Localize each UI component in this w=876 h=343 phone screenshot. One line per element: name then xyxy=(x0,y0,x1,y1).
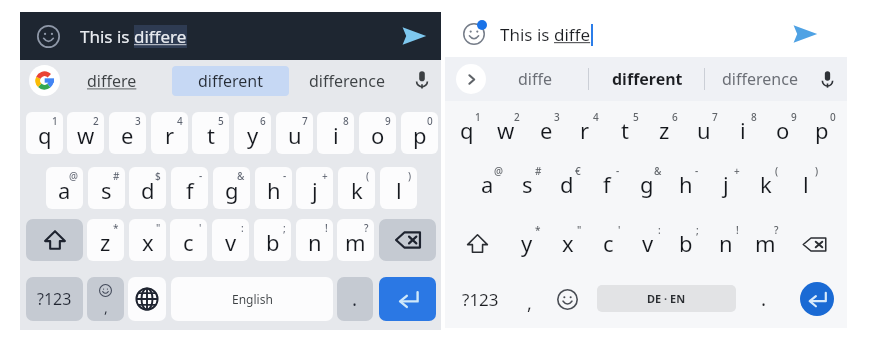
button[interactable]: h xyxy=(668,164,704,204)
staticText: This is xyxy=(500,23,554,46)
button[interactable]: w xyxy=(488,110,524,150)
button[interactable]: v xyxy=(212,219,249,261)
button[interactable]: Google xyxy=(29,65,60,96)
staticText: 1 xyxy=(475,110,481,124)
button[interactable]: difference xyxy=(296,60,398,101)
staticText: h xyxy=(267,175,281,205)
button[interactable]: e xyxy=(528,110,564,150)
button[interactable]: . xyxy=(748,275,780,323)
button[interactable]: Send xyxy=(401,23,427,49)
button[interactable]: . xyxy=(337,277,373,321)
button[interactable]: different xyxy=(597,57,697,101)
button[interactable]: a xyxy=(46,167,83,209)
button[interactable]: z xyxy=(646,110,682,150)
button[interactable]: c xyxy=(170,219,207,261)
button[interactable]: u xyxy=(276,112,313,154)
button[interactable]: k xyxy=(748,164,784,204)
button[interactable]: ?123 xyxy=(453,275,508,323)
staticText: € xyxy=(575,164,581,178)
button[interactable]: z xyxy=(87,219,124,261)
button[interactable]: difference xyxy=(710,57,810,101)
button[interactable]: m xyxy=(747,223,783,263)
staticText: 0 xyxy=(830,110,836,124)
button[interactable]: Emoji xyxy=(557,289,578,310)
staticText: + xyxy=(322,169,328,183)
staticText: o xyxy=(371,120,385,150)
staticText: # xyxy=(113,169,120,183)
button[interactable]: Backspace xyxy=(379,219,436,261)
button[interactable]: c xyxy=(590,223,626,263)
button[interactable]: j xyxy=(708,164,744,204)
button[interactable]: More suggestions xyxy=(456,64,486,94)
button[interactable]: g xyxy=(213,167,250,209)
button[interactable]: p xyxy=(804,110,840,150)
button[interactable]: Enter xyxy=(800,282,834,316)
button[interactable]: l xyxy=(380,167,417,209)
button[interactable]: y xyxy=(509,223,545,263)
button[interactable]: f xyxy=(589,164,625,204)
button[interactable]: q xyxy=(26,112,63,154)
staticText: - xyxy=(695,164,699,178)
staticText: q xyxy=(38,120,52,150)
button[interactable]: Shift xyxy=(465,231,489,255)
button[interactable]: k xyxy=(338,167,375,209)
staticText: * xyxy=(113,221,119,235)
button[interactable]: d xyxy=(549,164,585,204)
button[interactable]: m xyxy=(337,219,374,261)
button[interactable]: q xyxy=(449,110,485,150)
button[interactable]: Emoji and comma xyxy=(87,277,124,321)
button[interactable]: Send xyxy=(792,21,818,47)
staticText: ; xyxy=(283,221,286,235)
staticText: t xyxy=(207,120,215,150)
button[interactable]: e xyxy=(109,112,146,154)
button[interactable]: s xyxy=(509,164,545,204)
button[interactable]: d xyxy=(129,167,166,209)
button[interactable]: r xyxy=(151,112,188,154)
button[interactable]: w xyxy=(67,112,104,154)
button[interactable]: i xyxy=(725,110,761,150)
button[interactable]: n xyxy=(708,223,744,263)
button[interactable]: different xyxy=(172,66,289,96)
button[interactable]: DE · EN xyxy=(597,285,736,312)
button[interactable]: Switch language xyxy=(128,277,166,321)
button[interactable]: t xyxy=(607,110,643,150)
button[interactable]: Voice input xyxy=(412,70,432,90)
button[interactable]: Voice input xyxy=(817,69,837,89)
staticText: i xyxy=(740,115,746,145)
button[interactable]: differe xyxy=(70,60,154,101)
button[interactable]: h xyxy=(255,167,292,209)
button[interactable]: i xyxy=(317,112,354,154)
button[interactable]: x xyxy=(129,219,166,261)
button[interactable]: r xyxy=(567,110,603,150)
button[interactable]: l xyxy=(788,164,824,204)
button[interactable]: u xyxy=(686,110,722,150)
button[interactable]: a xyxy=(469,164,505,204)
button[interactable]: b xyxy=(668,223,704,263)
staticText: ? xyxy=(774,223,779,237)
button[interactable]: Enter xyxy=(379,277,436,321)
button[interactable]: p xyxy=(401,112,438,154)
button[interactable]: ?123 xyxy=(26,277,83,321)
button[interactable]: s xyxy=(88,167,125,209)
button[interactable]: Backspace xyxy=(801,231,827,257)
button[interactable]: t xyxy=(192,112,229,154)
button[interactable]: v xyxy=(630,223,666,263)
staticText: g xyxy=(640,169,654,199)
button[interactable]: x xyxy=(550,223,586,263)
button[interactable]: , xyxy=(513,279,545,327)
button[interactable]: n xyxy=(296,219,333,261)
button[interactable]: j xyxy=(296,167,333,209)
button[interactable]: diffe xyxy=(490,57,580,101)
button[interactable]: Emoji xyxy=(463,23,485,45)
button[interactable]: b xyxy=(254,219,291,261)
button[interactable]: g xyxy=(629,164,665,204)
button[interactable]: y xyxy=(234,112,271,154)
button[interactable]: English xyxy=(171,277,333,321)
button[interactable]: o xyxy=(359,112,396,154)
staticText: 4 xyxy=(593,110,599,124)
staticText: . xyxy=(761,286,767,312)
button[interactable]: f xyxy=(171,167,208,209)
button[interactable]: o xyxy=(765,110,801,150)
button[interactable]: Emoji xyxy=(36,24,60,48)
button[interactable]: Shift xyxy=(26,219,83,261)
